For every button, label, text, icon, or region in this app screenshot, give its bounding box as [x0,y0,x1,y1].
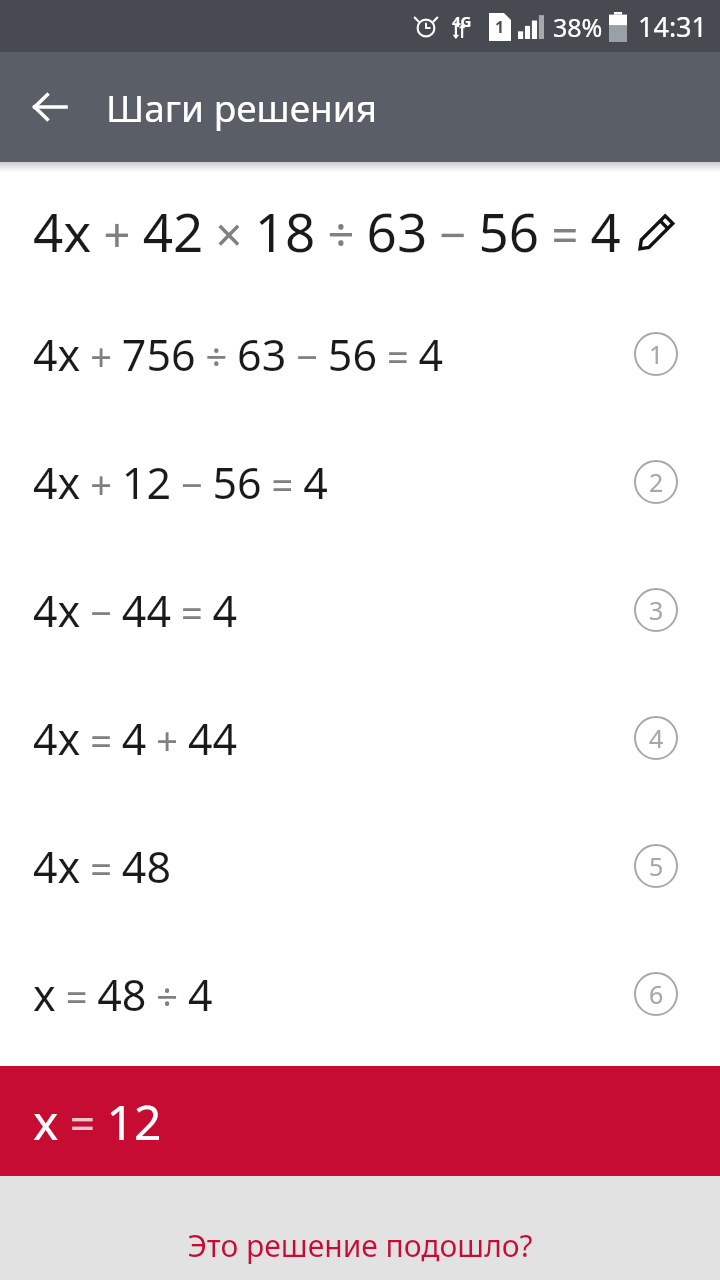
button[interactable]: Back [18,75,82,139]
staticText: 1 [495,16,505,38]
button[interactable]: x = 12 [0,1066,720,1176]
staticText: 4 [649,721,664,755]
button[interactable]: 4x + 12 − 56 = 4 [0,418,720,546]
button[interactable]: Edit [628,203,684,259]
button[interactable]: x = 48 ÷ 4 [0,930,720,1058]
button[interactable]: 4x − 44 = 4 [0,546,720,674]
button[interactable]: 4x + 756 ÷ 63 − 56 = 4 [0,290,720,418]
staticText: 5 [649,849,664,883]
staticText: 6 [649,977,664,1011]
staticText: 4x − 44 = 4 [33,581,238,640]
staticText: Это решение подошло? [187,1225,533,1266]
staticText: 4x + 12 − 56 = 4 [33,453,328,512]
staticText: 4x = 4 + 44 [33,709,238,768]
staticText: 4x = 48 [33,837,172,896]
staticText: 4G [452,11,472,31]
staticText: Шаги решения [106,82,378,132]
button[interactable]: 4x = 4 + 44 [0,674,720,802]
staticText: 4x + 756 ÷ 63 − 56 = 4 [33,325,444,384]
staticText: x = 48 ÷ 4 [33,965,213,1024]
staticText: 3 [649,593,664,627]
staticText: 1 [649,337,664,371]
button[interactable]: 4x + 42 × 18 ÷ 63 − 56 = 4 [0,172,720,290]
button[interactable]: Это решение подошло? [0,1225,720,1280]
staticText: 38% [553,10,603,44]
staticText: 2 [649,465,664,499]
staticText: 14:31 [638,8,708,45]
staticText: 4x + 42 × 18 ÷ 63 − 56 = 4 [33,195,621,267]
staticText: x = 12 [33,1089,162,1154]
button[interactable]: 4x = 48 [0,802,720,930]
